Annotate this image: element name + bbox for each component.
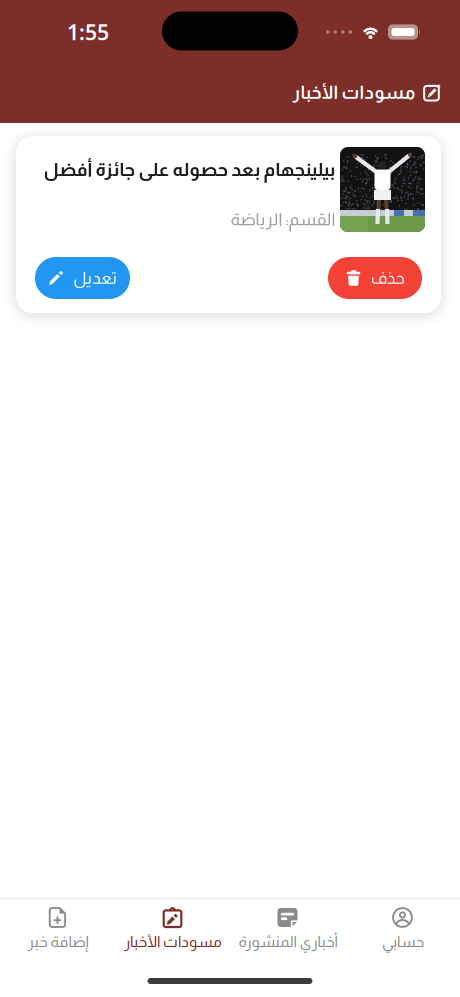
staticText: 1:55 bbox=[67, 18, 109, 46]
staticText: أخباري المنشورة bbox=[238, 933, 337, 950]
staticText: إضافة خبر bbox=[27, 933, 88, 950]
button[interactable]: مسودات الأخبار bbox=[115, 907, 230, 950]
staticText: بيلينجهام بعد حصوله على جائزة أفضل bbox=[43, 159, 335, 180]
staticText: مسودات الأخبار bbox=[123, 933, 221, 950]
button[interactable]: إضافة خبر bbox=[0, 907, 115, 950]
staticText: حذف bbox=[370, 269, 404, 287]
button[interactable]: New Draft bbox=[423, 82, 443, 102]
button[interactable]: أخباري المنشورة bbox=[230, 907, 345, 950]
button[interactable]: حسابي bbox=[345, 907, 460, 950]
button[interactable]: تعديل bbox=[35, 257, 130, 299]
staticText: حسابي bbox=[381, 933, 423, 950]
button[interactable]: حذف bbox=[328, 257, 422, 299]
staticText: تعديل bbox=[73, 269, 117, 287]
staticText: مسودات الأخبار bbox=[292, 82, 415, 103]
staticText: القسم: الرياضة bbox=[230, 210, 335, 229]
